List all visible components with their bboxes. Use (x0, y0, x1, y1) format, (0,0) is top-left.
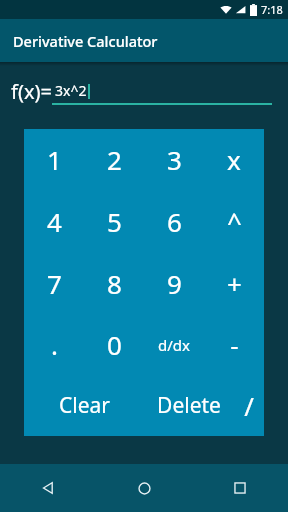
staticText: . (51, 327, 58, 362)
button[interactable]: / (234, 375, 264, 436)
button[interactable]: Delete (144, 375, 234, 436)
button[interactable]: 0 (84, 314, 144, 375)
button[interactable]: Clear (24, 375, 144, 436)
button[interactable]: 4 (24, 191, 84, 252)
button[interactable]: f(x)= (11, 78, 272, 105)
button[interactable]: 9 (144, 253, 204, 314)
staticText: 4 (47, 204, 62, 239)
button[interactable]: 1 (24, 129, 84, 190)
button[interactable]: x (204, 129, 264, 190)
staticText: 3 (167, 142, 182, 177)
button[interactable]: + (204, 253, 264, 314)
button[interactable]: - (204, 314, 264, 375)
staticText: - (230, 327, 239, 362)
button[interactable]: d/dx (144, 314, 204, 375)
staticText: Derivative Calculator (13, 31, 158, 51)
staticText: Clear (59, 391, 110, 420)
button[interactable]: . (24, 314, 84, 375)
staticText: 7 (47, 266, 62, 301)
staticText: f(x)= (11, 78, 52, 105)
staticText: 7:18 (261, 2, 283, 17)
staticText: 6 (167, 204, 182, 239)
staticText: 5 (107, 204, 122, 239)
button[interactable]: 3 (144, 129, 204, 190)
staticText: / (244, 388, 254, 423)
staticText: ^ (227, 204, 242, 239)
staticText: 2 (107, 142, 122, 177)
button[interactable]: Recent apps (192, 464, 288, 512)
staticText: 9 (167, 266, 182, 301)
staticText: 3x^2 (55, 81, 87, 100)
button[interactable]: 5 (84, 191, 144, 252)
button[interactable]: 8 (84, 253, 144, 314)
button[interactable]: 2 (84, 129, 144, 190)
staticText: + (227, 266, 242, 301)
staticText: x (227, 142, 241, 177)
staticText: d/dx (158, 335, 190, 355)
button[interactable]: Home (96, 464, 192, 512)
button[interactable]: 7 (24, 253, 84, 314)
button[interactable]: 6 (144, 191, 204, 252)
button[interactable]: Back (0, 464, 96, 512)
staticText: 0 (107, 327, 122, 362)
staticText: 8 (107, 266, 122, 301)
button[interactable]: ^ (204, 191, 264, 252)
staticText: Delete (157, 391, 221, 420)
staticText: 1 (47, 142, 62, 177)
